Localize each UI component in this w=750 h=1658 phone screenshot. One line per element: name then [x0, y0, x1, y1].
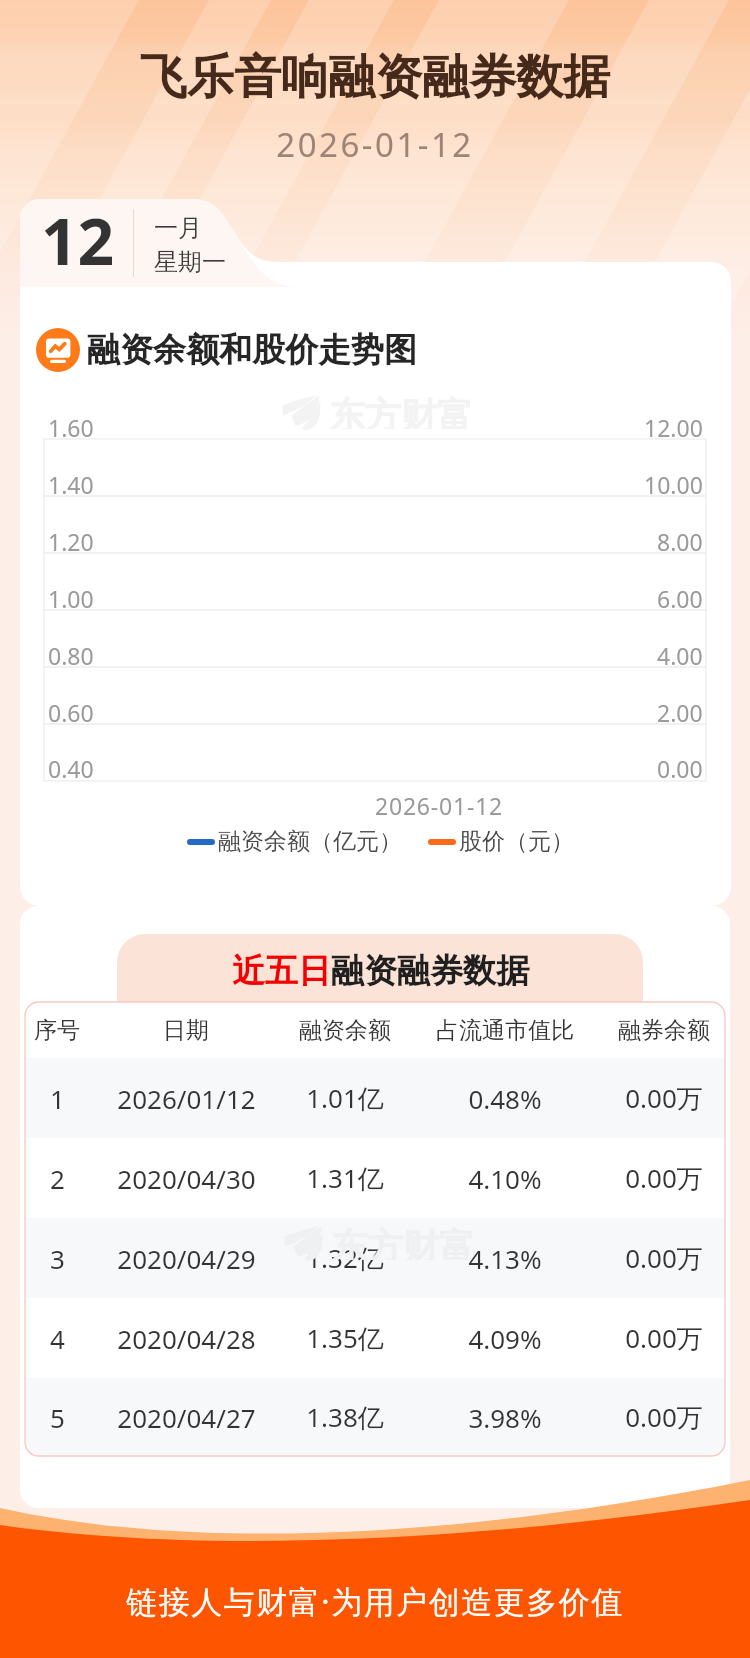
button[interactable]: 1 [25, 1058, 725, 1138]
staticText: 0.00万 [625, 1320, 703, 1356]
staticText: 0.00万 [625, 1160, 703, 1196]
staticText: 占流通市值比 [436, 1016, 574, 1045]
button[interactable]: 3 [25, 1218, 725, 1298]
staticText: 2 [50, 1161, 65, 1196]
staticText: 3.98% [468, 1400, 542, 1435]
button[interactable]: 5 [25, 1378, 725, 1456]
staticText: 4.09% [468, 1321, 542, 1356]
staticText: 1.40 [48, 469, 94, 500]
staticText: 0.48% [468, 1081, 542, 1116]
button[interactable]: 融资余额和股价走势图 [36, 328, 417, 372]
staticText: 股价（元） [459, 827, 574, 856]
staticText: 融券余额 [618, 1016, 710, 1045]
button[interactable]: 融资余额（亿元） [187, 827, 402, 856]
staticText: 4.00 [657, 640, 703, 671]
staticText: 6.00 [657, 583, 703, 614]
staticText: 4 [50, 1321, 65, 1356]
staticText: 4.13% [468, 1241, 542, 1276]
staticText: 2020/04/29 [117, 1241, 256, 1276]
staticText: 1.38亿 [306, 1399, 384, 1435]
staticText: 1.20 [48, 526, 94, 557]
staticText: 4.10% [468, 1161, 542, 1196]
staticText: 2026/01/12 [117, 1081, 256, 1116]
staticText: 10.00 [644, 469, 703, 500]
staticText: 12 [41, 197, 115, 284]
button[interactable]: 4 [25, 1298, 725, 1378]
button[interactable]: 股价（元） [428, 827, 574, 856]
staticText: 一月 [154, 213, 202, 243]
staticText: 星期一 [154, 247, 226, 277]
staticText: 1.35亿 [306, 1320, 384, 1356]
staticText: 1.00 [48, 583, 94, 614]
staticText: 东方财富 [331, 1224, 475, 1260]
staticText: 融资余额 [299, 1016, 391, 1045]
staticText: 5 [50, 1400, 65, 1435]
staticText: 0.60 [48, 697, 94, 728]
staticText: 0.80 [48, 640, 94, 671]
staticText: 1.31亿 [306, 1160, 384, 1196]
staticText: 东方财富 [329, 393, 473, 429]
staticText: 2026-01-12 [375, 790, 504, 821]
staticText: 近五日融资融券数据 [232, 950, 529, 992]
staticText: 0.00万 [625, 1240, 703, 1276]
staticText: 0.00万 [625, 1080, 703, 1116]
staticText: 日期 [163, 1016, 209, 1045]
staticText: 2020/04/28 [117, 1321, 256, 1356]
staticText: 序号 [34, 1016, 80, 1045]
staticText: 飞乐音响融资融券数据 [0, 48, 750, 107]
staticText: 1.01亿 [306, 1080, 384, 1116]
staticText: 1 [50, 1081, 65, 1116]
button[interactable]: 序号 [25, 1002, 725, 1058]
staticText: 1.32亿 [306, 1240, 384, 1276]
staticText: 2026-01-12 [0, 122, 750, 167]
staticText: 0.00万 [625, 1399, 703, 1435]
button[interactable]: 2 [25, 1138, 725, 1218]
staticText: 2020/04/30 [117, 1161, 256, 1196]
staticText: 链接人与财富·为用户创造更多价值 [0, 1580, 750, 1622]
staticText: 0.40 [48, 753, 94, 784]
staticText: 融资余额和股价走势图 [87, 329, 417, 371]
staticText: 3 [50, 1241, 65, 1276]
staticText: 0.00 [657, 753, 703, 784]
staticText: 2020/04/27 [117, 1400, 256, 1435]
staticText: 融资余额（亿元） [218, 827, 402, 856]
staticText: 8.00 [657, 526, 703, 557]
staticText: 12.00 [644, 412, 703, 443]
staticText: 2.00 [657, 697, 703, 728]
staticText: 1.60 [48, 412, 94, 443]
